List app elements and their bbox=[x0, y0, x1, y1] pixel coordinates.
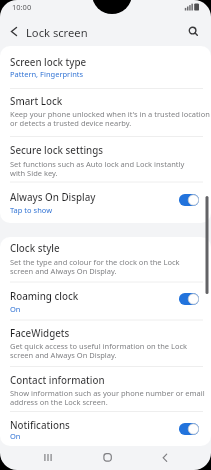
button[interactable]: Notifications bbox=[0, 412, 211, 446]
button[interactable] bbox=[155, 448, 177, 466]
staticText: Keep your phone unlocked when it's in a … bbox=[10, 109, 210, 128]
button[interactable] bbox=[179, 194, 199, 206]
staticText: Show information such as your phone numb… bbox=[10, 388, 205, 407]
button[interactable]: Roaming clock bbox=[0, 282, 211, 320]
staticText: Screen lock type bbox=[10, 56, 87, 69]
staticText: Tap to show bbox=[10, 205, 53, 215]
staticText: Lock screen bbox=[26, 25, 88, 40]
button[interactable] bbox=[2, 20, 26, 42]
staticText: Contact information bbox=[10, 374, 105, 387]
button[interactable] bbox=[37, 448, 59, 466]
staticText: Pattern, Fingerprints bbox=[10, 69, 84, 79]
button[interactable]: Clock style bbox=[0, 237, 211, 283]
staticText: Smart Lock bbox=[10, 95, 63, 108]
staticText: Always On Display bbox=[10, 191, 96, 204]
staticText: Set the type and colour for the clock on… bbox=[10, 257, 180, 276]
button[interactable] bbox=[184, 20, 204, 42]
button[interactable] bbox=[97, 448, 119, 466]
staticText: Notifications bbox=[10, 419, 70, 432]
button[interactable]: Smart Lock bbox=[0, 89, 211, 137]
staticText: FaceWidgets bbox=[10, 327, 70, 340]
staticText: On bbox=[10, 304, 21, 314]
staticText: 10:00 bbox=[12, 2, 32, 12]
staticText: Roaming clock bbox=[10, 290, 79, 303]
button[interactable]: Contact information bbox=[0, 367, 211, 412]
staticText: Get quick access to useful information o… bbox=[10, 341, 188, 360]
button[interactable]: FaceWidgets bbox=[0, 320, 211, 367]
button[interactable] bbox=[179, 423, 199, 435]
button[interactable]: Secure lock settings bbox=[0, 137, 211, 183]
staticText: Set functions such as Auto lock and Lock… bbox=[10, 159, 185, 178]
staticText: Secure lock settings bbox=[10, 144, 104, 157]
button[interactable] bbox=[179, 293, 199, 305]
staticText: Clock style bbox=[10, 242, 60, 255]
staticText: On bbox=[10, 431, 21, 441]
button[interactable]: Screen lock type bbox=[0, 46, 211, 89]
button[interactable]: Always On Display bbox=[0, 182, 211, 222]
